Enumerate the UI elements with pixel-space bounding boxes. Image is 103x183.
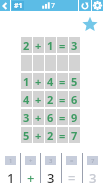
staticText: = <box>59 74 66 89</box>
staticText: + <box>35 110 42 125</box>
button[interactable]: + <box>20 153 40 183</box>
button[interactable]: 6 <box>69 91 80 107</box>
button[interactable]: 4 <box>21 91 32 107</box>
staticText: 5 <box>23 128 30 143</box>
staticText: 1 <box>23 74 30 89</box>
staticText: = <box>59 110 66 125</box>
staticText: = <box>68 169 76 183</box>
staticText: + <box>35 128 42 143</box>
staticText: + <box>27 169 35 183</box>
button[interactable]: = <box>57 91 68 107</box>
button[interactable]: 7 <box>42 0 56 11</box>
button[interactable]: 9 <box>69 109 80 125</box>
button[interactable]: = <box>61 153 82 183</box>
button[interactable]: 2 <box>45 91 56 107</box>
staticText: + <box>35 38 42 53</box>
staticText: = <box>59 38 66 53</box>
button[interactable]: 1 <box>45 37 56 53</box>
staticText: 2 <box>47 92 54 107</box>
button[interactable]: 3 <box>21 109 32 125</box>
button[interactable]: Settings <box>92 0 103 11</box>
staticText: 3 <box>23 110 30 125</box>
button[interactable]: 2 <box>21 37 32 53</box>
button[interactable]: Back <box>0 0 10 11</box>
button[interactable]: 3 <box>69 37 80 53</box>
staticText: 2 <box>23 38 30 53</box>
button[interactable]: 5 <box>69 73 80 89</box>
button[interactable]: 7 <box>82 153 103 183</box>
staticText: 2 <box>47 128 54 143</box>
staticText: + <box>35 92 42 107</box>
staticText: = <box>59 92 66 107</box>
staticText: 1 <box>7 169 15 183</box>
staticText: = <box>70 157 74 165</box>
staticText: 7 <box>91 157 95 165</box>
button[interactable]: + <box>33 91 44 107</box>
button[interactable]: = <box>57 109 68 125</box>
staticText: 7 <box>71 128 78 143</box>
button[interactable]: + <box>33 37 44 53</box>
button[interactable]: 6 <box>45 109 56 125</box>
button[interactable]: 4 <box>45 73 56 89</box>
staticText: = <box>59 128 66 143</box>
button[interactable]: 2 <box>45 127 56 143</box>
button[interactable]: + <box>33 109 44 125</box>
button[interactable]: + <box>33 73 44 89</box>
button[interactable]: = <box>57 37 68 53</box>
staticText: 3 <box>47 169 55 183</box>
button[interactable]: Restart <box>79 0 91 11</box>
button[interactable]: 3 <box>40 153 61 183</box>
staticText: 3 <box>89 169 97 183</box>
button[interactable]: = <box>57 127 68 143</box>
staticText: + <box>35 74 42 89</box>
button[interactable]: = <box>57 73 68 89</box>
staticText: 4 <box>47 74 54 89</box>
staticText: + <box>29 157 33 165</box>
staticText: 1 <box>47 38 54 53</box>
staticText: #1 <box>14 1 23 10</box>
staticText: 9 <box>71 110 78 125</box>
button[interactable]: #1 <box>12 1 24 10</box>
staticText: 6 <box>71 92 78 107</box>
staticText: 7 <box>51 1 56 11</box>
button[interactable]: 5 <box>21 127 32 143</box>
staticText: 4 <box>23 92 30 107</box>
staticText: 3 <box>71 38 78 53</box>
staticText: 3 <box>49 157 53 165</box>
staticText: 6 <box>47 110 54 125</box>
button[interactable]: 7 <box>69 127 80 143</box>
staticText: 5 <box>71 74 78 89</box>
staticText: 1 <box>9 157 13 165</box>
button[interactable]: 1 <box>21 73 32 89</box>
button[interactable]: + <box>33 127 44 143</box>
button[interactable]: 1 <box>0 153 20 183</box>
